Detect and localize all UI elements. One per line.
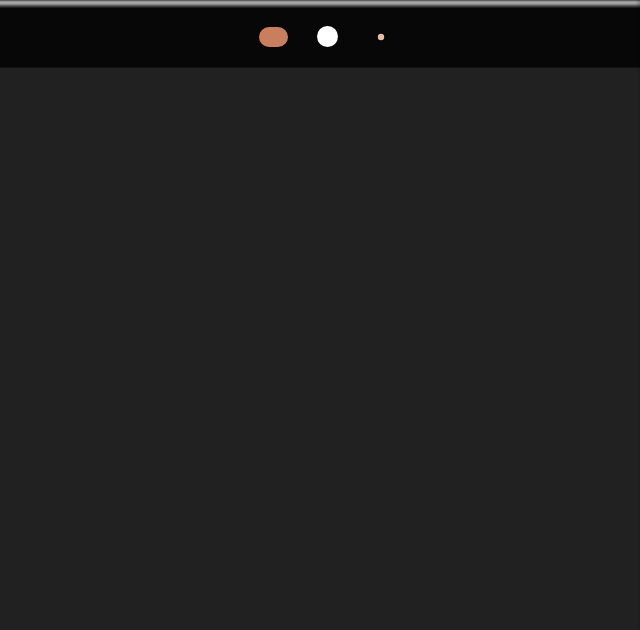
button[interactable]: Status dot <box>373 29 389 45</box>
button[interactable]: Primary indicator <box>259 27 288 47</box>
button[interactable]: Secondary indicator <box>317 26 338 47</box>
